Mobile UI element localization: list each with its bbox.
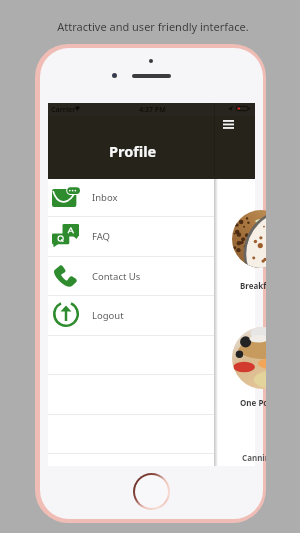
staticText: FAQ xyxy=(92,230,111,243)
button[interactable]: FAQ xyxy=(48,216,214,256)
staticText: Profile xyxy=(109,141,157,161)
button[interactable]: Open navigation menu xyxy=(212,108,245,141)
staticText: Attractive and user friendly interface. xyxy=(3,19,300,34)
staticText: Inbox xyxy=(92,191,118,204)
staticText: Contact Us xyxy=(92,270,141,283)
staticText: Carrier xyxy=(51,105,76,115)
staticText: 4:37 PM xyxy=(139,105,166,115)
button[interactable]: Contact Us xyxy=(48,256,214,296)
staticText: Breakfast xyxy=(240,280,266,291)
staticText: One Pot xyxy=(240,397,266,408)
staticText: Canning xyxy=(242,452,266,463)
button[interactable]: Inbox xyxy=(48,177,214,217)
button[interactable]: Logout xyxy=(48,295,214,335)
staticText: Logout xyxy=(92,309,124,322)
